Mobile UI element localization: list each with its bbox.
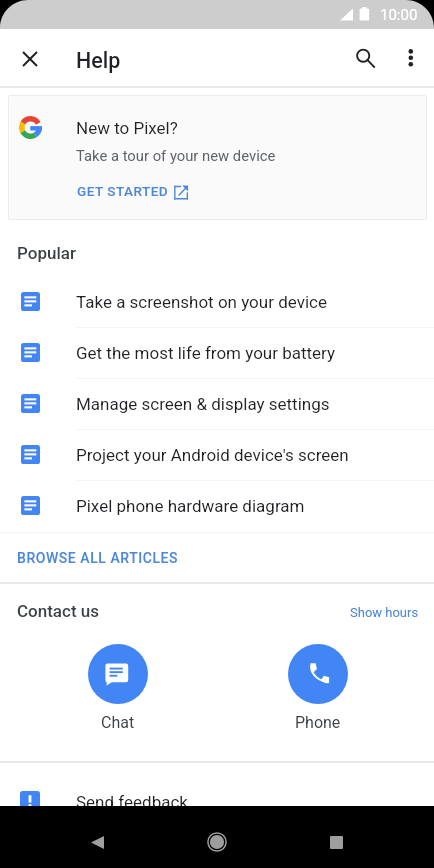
staticText: Manage screen & display settings: [76, 394, 330, 414]
button[interactable]: Back: [73, 818, 121, 866]
button[interactable]: New to Pixel?: [8, 95, 427, 220]
staticText: Contact us: [17, 601, 99, 621]
staticText: Show hours: [350, 605, 419, 620]
staticText: Help: [76, 48, 121, 73]
staticText: New to Pixel?: [76, 118, 178, 138]
button[interactable]: Home: [193, 818, 241, 866]
staticText: Get the most life from your battery: [76, 343, 336, 363]
button[interactable]: Manage screen & display settings: [0, 379, 434, 430]
button[interactable]: Show hours: [344, 600, 425, 625]
staticText: Project your Android device's screen: [76, 445, 349, 465]
button[interactable]: Pixel phone hardware diagram: [0, 481, 434, 532]
button[interactable]: Project your Android device's screen: [0, 430, 434, 481]
button[interactable]: GET STARTED: [73, 180, 193, 202]
button[interactable]: Chat: [74, 634, 162, 732]
staticText: Take a screenshot on your device: [76, 292, 327, 312]
button[interactable]: Recents: [312, 818, 360, 866]
staticText: 10:00: [380, 6, 418, 24]
button[interactable]: Take a screenshot on your device: [0, 277, 434, 328]
staticText: Pixel phone hardware diagram: [76, 496, 305, 516]
button[interactable]: Send feedback: [0, 775, 434, 826]
button[interactable]: More options: [387, 34, 434, 81]
button[interactable]: Phone: [274, 634, 362, 732]
button[interactable]: Search: [341, 34, 388, 81]
button[interactable]: BROWSE ALL ARTICLES: [0, 533, 434, 582]
button[interactable]: Get the most life from your battery: [0, 328, 434, 379]
staticText: Take a tour of your new device: [76, 147, 276, 164]
staticText: Send feedback: [76, 792, 188, 812]
staticText: Chat: [101, 713, 135, 732]
staticText: Popular: [17, 243, 76, 263]
staticText: GET STARTED: [77, 183, 169, 199]
staticText: BROWSE ALL ARTICLES: [17, 550, 179, 566]
button[interactable]: Close: [11, 40, 48, 77]
staticText: Phone: [295, 713, 341, 732]
